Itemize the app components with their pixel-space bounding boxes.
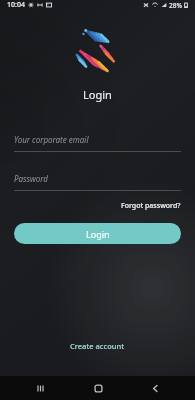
staticText: Login <box>86 228 110 240</box>
button[interactable]: Home <box>81 376 115 400</box>
staticText: 10:04 <box>7 0 25 10</box>
button[interactable]: Create account <box>54 336 141 356</box>
button[interactable]: Password <box>14 170 181 191</box>
button[interactable]: Recent apps <box>23 376 57 400</box>
staticText: Login <box>83 87 112 102</box>
staticText: Forgot password? <box>121 201 181 211</box>
button[interactable]: Back <box>138 376 172 400</box>
button[interactable]: Login <box>14 223 181 244</box>
staticText: 28% <box>169 1 182 10</box>
staticText: Your corporate email <box>14 134 89 145</box>
button[interactable]: Your corporate email <box>14 131 181 152</box>
staticText: Password <box>14 173 48 184</box>
button[interactable]: Forgot password? <box>107 198 195 214</box>
staticText: Create account <box>70 341 125 351</box>
